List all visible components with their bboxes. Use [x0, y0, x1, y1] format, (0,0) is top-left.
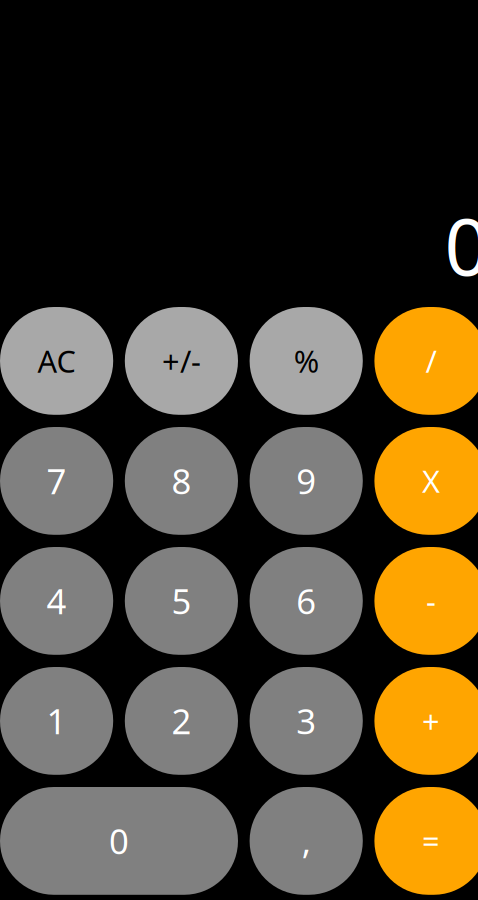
staticText: +/- [162, 340, 201, 381]
button[interactable]: - [374, 547, 478, 655]
staticText: - [426, 580, 436, 621]
button[interactable]: 2 [125, 667, 238, 775]
button[interactable]: 6 [250, 547, 363, 655]
button[interactable]: / [374, 307, 478, 415]
staticText: 3 [296, 698, 316, 744]
button[interactable]: AC [0, 307, 113, 415]
button[interactable]: 0 [0, 787, 238, 895]
staticText: = [422, 820, 440, 861]
staticText: 1 [47, 698, 67, 744]
button[interactable]: X [374, 427, 478, 535]
staticText: 0 [445, 193, 478, 297]
button[interactable]: % [250, 307, 363, 415]
button[interactable]: 5 [125, 547, 238, 655]
button[interactable]: 1 [0, 667, 113, 775]
button[interactable]: 9 [250, 427, 363, 535]
button[interactable]: +/- [125, 307, 238, 415]
staticText: 4 [47, 578, 67, 624]
staticText: + [422, 700, 440, 741]
button[interactable]: + [374, 667, 478, 775]
staticText: 8 [171, 458, 191, 504]
staticText: 9 [296, 458, 316, 504]
button[interactable]: , [250, 787, 363, 895]
staticText: , [302, 818, 311, 864]
button[interactable]: 4 [0, 547, 113, 655]
staticText: X [422, 460, 440, 501]
button[interactable]: 3 [250, 667, 363, 775]
button[interactable]: 8 [125, 427, 238, 535]
button[interactable]: = [374, 787, 478, 895]
staticText: / [425, 340, 436, 381]
button[interactable]: 7 [0, 427, 113, 535]
staticText: 6 [296, 578, 316, 624]
staticText: AC [38, 340, 76, 381]
staticText: 5 [171, 578, 191, 624]
staticText: 7 [47, 458, 67, 504]
staticText: 2 [171, 698, 191, 744]
staticText: 0 [109, 818, 129, 864]
staticText: % [294, 340, 319, 381]
